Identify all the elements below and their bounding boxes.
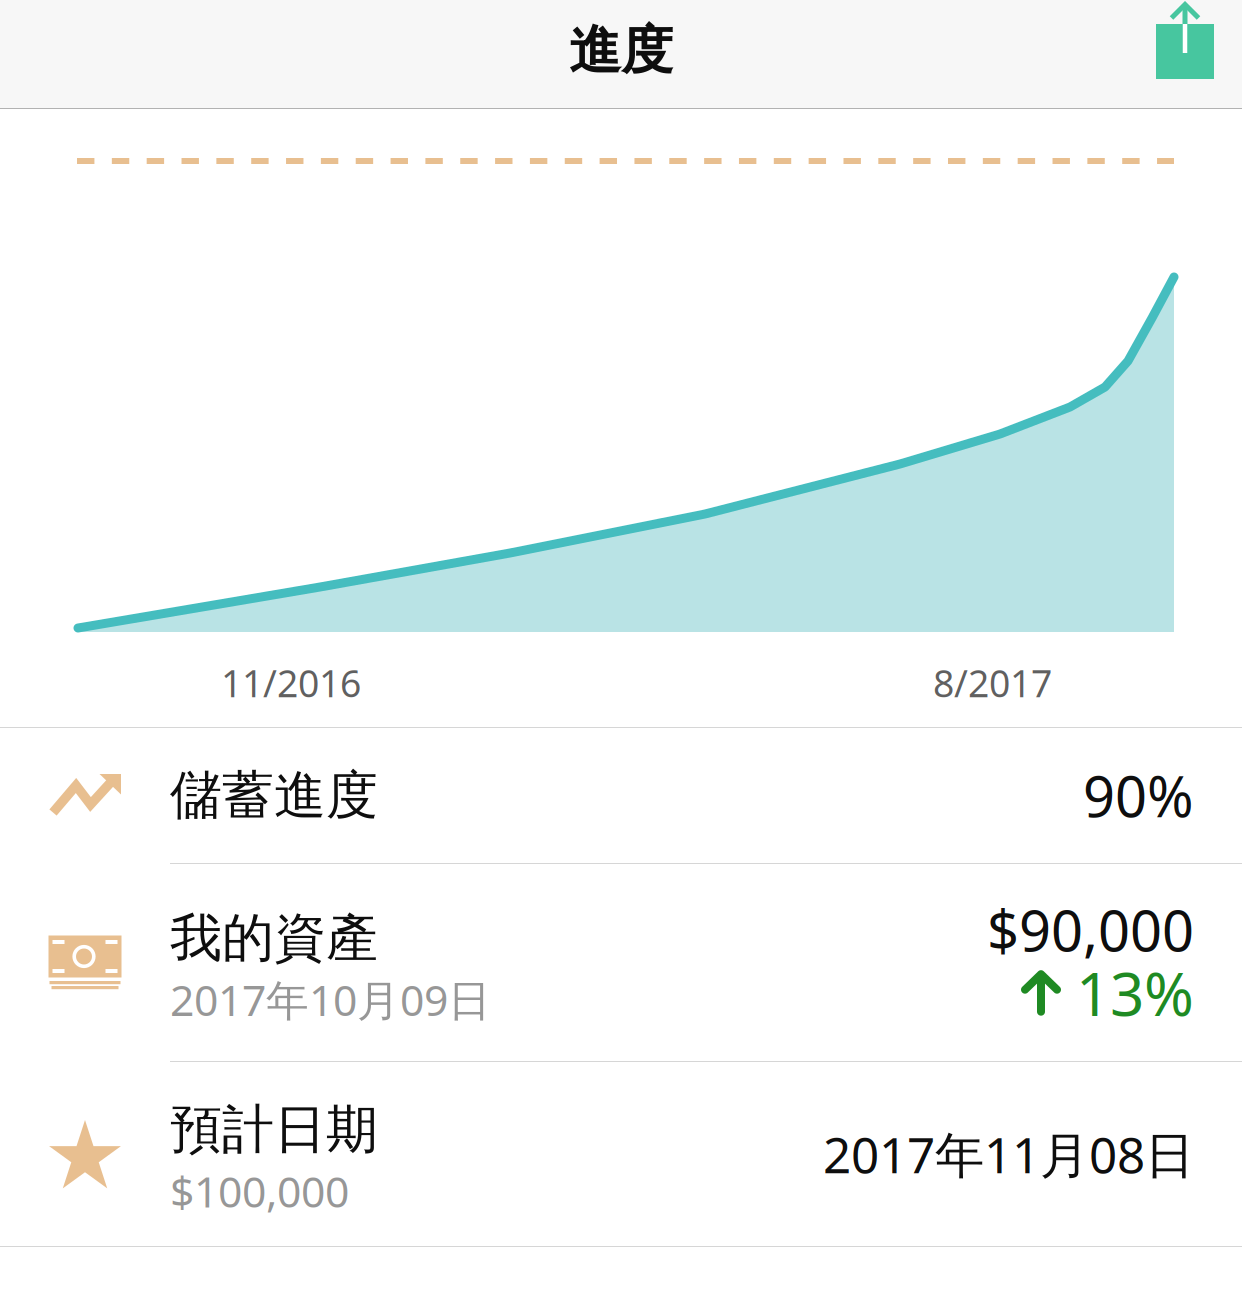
staticText: 儲蓄進度 <box>170 764 378 827</box>
staticText: 11/2016 <box>221 658 361 708</box>
staticText: 13% <box>1076 953 1194 1032</box>
staticText: 2017年11月08日 <box>823 1121 1194 1187</box>
staticText: $100,000 <box>170 1163 349 1219</box>
staticText: 90% <box>1083 758 1194 833</box>
staticText: 2017年10月09日 <box>170 971 491 1028</box>
button[interactable]: 預計日期 <box>0 1062 1242 1246</box>
button[interactable]: Share <box>1116 0 1242 108</box>
staticText: $90,000 <box>987 892 1194 967</box>
staticText: 8/2017 <box>933 658 1052 708</box>
staticText: 預計日期 <box>170 1098 378 1162</box>
staticText: 進度 <box>569 19 673 82</box>
staticText: 我的資產 <box>170 906 378 970</box>
button[interactable]: 我的資產 <box>0 864 1242 1061</box>
button[interactable]: 儲蓄進度 <box>0 728 1242 863</box>
